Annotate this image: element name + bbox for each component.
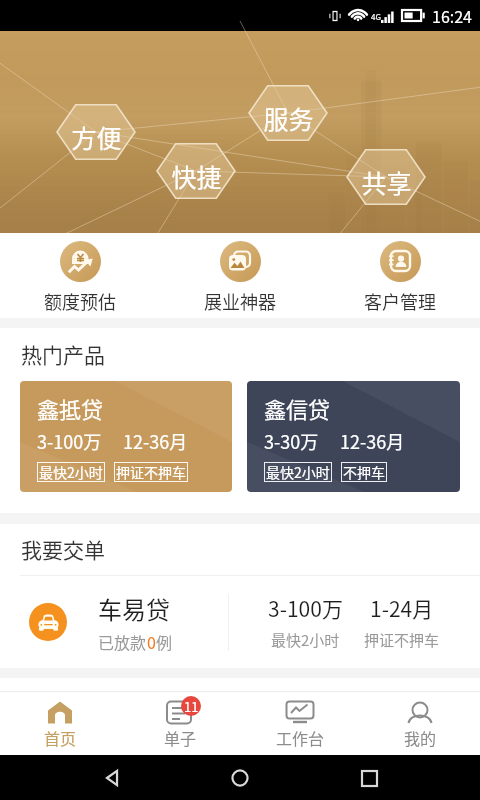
button[interactable]: 额度预估 <box>0 233 160 318</box>
staticText: 我的 <box>404 726 437 749</box>
button[interactable]: 车易贷 <box>0 576 480 668</box>
staticText: 展业神器 <box>204 288 276 314</box>
staticText: 不押车 <box>343 462 385 482</box>
staticText: 我要交单 <box>21 534 105 564</box>
staticText: 鑫抵贷 <box>37 392 104 424</box>
staticText: 首页 <box>44 726 77 749</box>
staticText: 方便 <box>71 119 122 155</box>
staticText: 热门产品 <box>21 339 105 369</box>
staticText: 服务 <box>263 100 314 136</box>
button[interactable]: 首页 <box>0 692 120 755</box>
staticText: 车易贷 <box>98 591 170 626</box>
staticText: 共享 <box>361 164 412 200</box>
staticText: 最快2小时 <box>266 462 330 482</box>
staticText: 押证不押车 <box>364 629 440 651</box>
staticText: 12-36月 <box>123 428 188 454</box>
staticText: 16:24 <box>432 4 472 27</box>
button[interactable]: Recent apps <box>352 761 386 795</box>
button[interactable]: 客户管理 <box>320 233 480 318</box>
staticText: 最快2小时 <box>271 629 340 651</box>
staticText: 工作台 <box>276 726 325 749</box>
staticText: 3-30万 <box>264 428 319 454</box>
staticText: 12-36月 <box>340 428 405 454</box>
staticText: 额度预估 <box>44 288 116 314</box>
button[interactable]: 鑫抵贷 <box>20 381 232 492</box>
button[interactable]: 鑫信贷 <box>247 381 460 492</box>
button[interactable]: 11 <box>120 692 240 755</box>
staticText: 最快2小时 <box>39 462 103 482</box>
staticText: 押证不押车 <box>116 462 186 482</box>
staticText: 3-100万 <box>268 593 343 623</box>
staticText: 11 <box>184 697 199 716</box>
staticText: 已放款 <box>98 630 147 653</box>
staticText: 例 <box>156 630 173 653</box>
staticText: 3-100万 <box>37 428 102 454</box>
staticText: 鑫信贷 <box>264 392 331 424</box>
staticText: 客户管理 <box>364 288 436 314</box>
staticText: 单子 <box>164 726 197 749</box>
staticText: 快捷 <box>171 158 222 194</box>
staticText: 4G <box>371 11 381 23</box>
button[interactable]: Back <box>95 761 129 795</box>
staticText: 0 <box>147 630 156 653</box>
staticText: 1-24月 <box>370 593 434 623</box>
button[interactable]: 工作台 <box>240 692 360 755</box>
button[interactable]: 我的 <box>360 692 480 755</box>
button[interactable]: Home <box>223 761 257 795</box>
button[interactable]: 展业神器 <box>160 233 320 318</box>
